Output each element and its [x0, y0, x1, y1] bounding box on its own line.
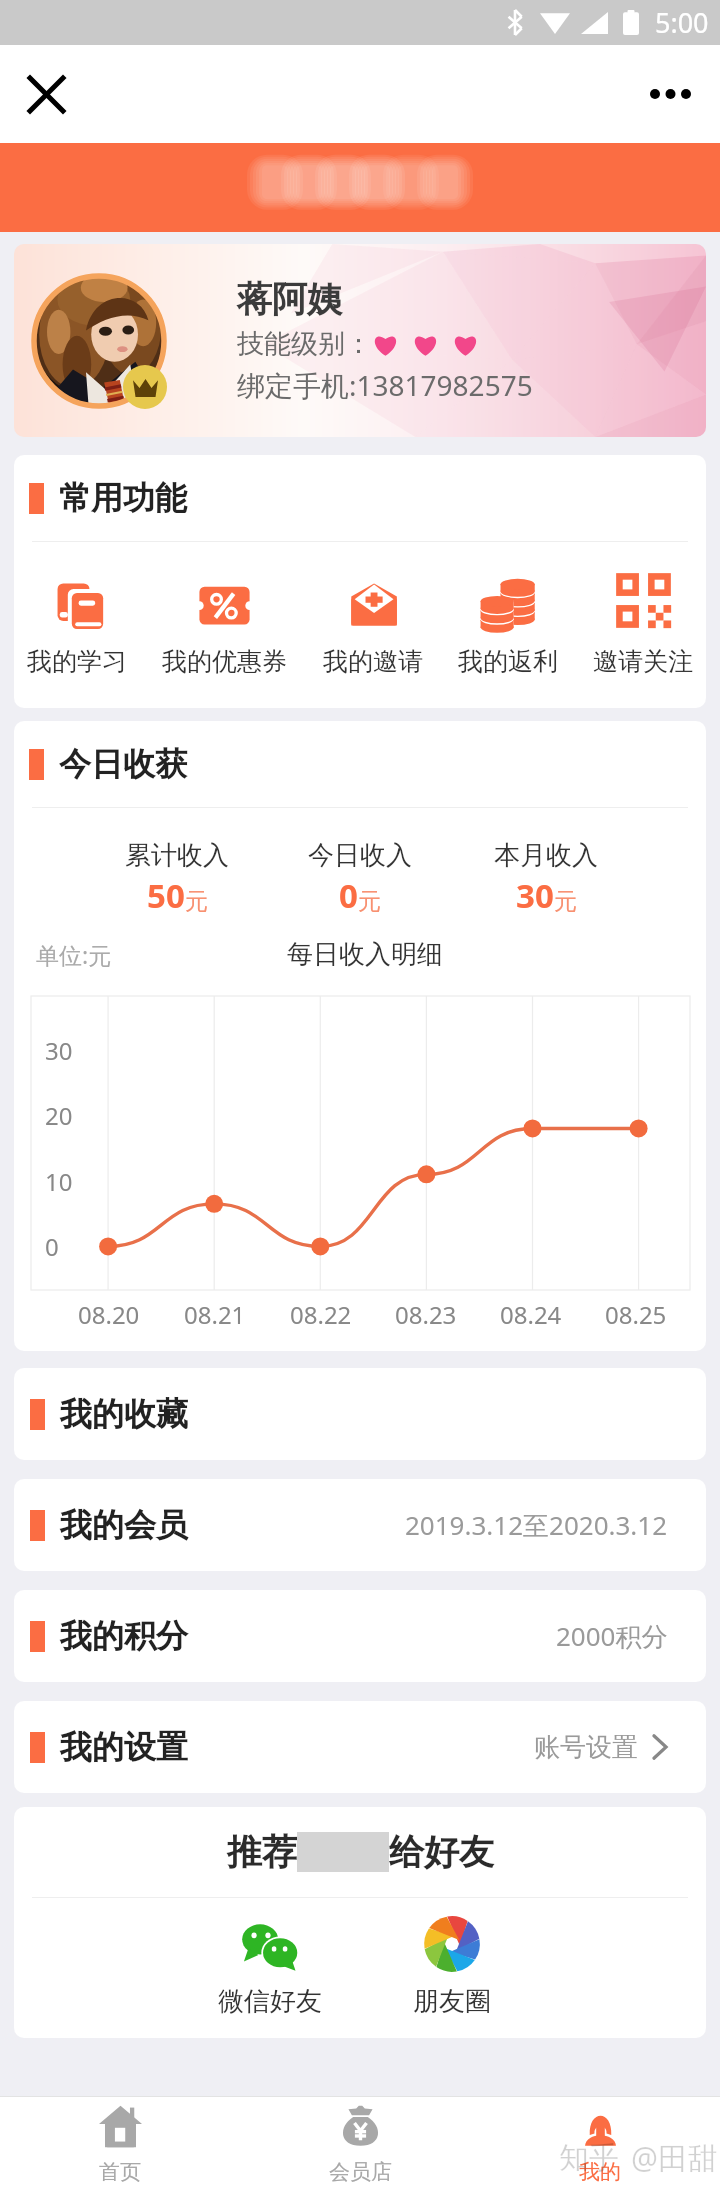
button[interactable]: 首页 [0, 2097, 240, 2192]
button[interactable]: 微信好友 [190, 1913, 350, 2020]
staticText: 微信好友 [218, 1985, 322, 2018]
button[interactable]: 我的邀请 [320, 572, 426, 677]
staticText: 2000积分 [556, 1618, 668, 1654]
staticText: 08.23 [395, 1298, 457, 1330]
button[interactable]: 我的收藏 [14, 1368, 706, 1460]
staticText: @田甜 [631, 2137, 718, 2178]
staticText: 30 [45, 1034, 73, 1067]
button[interactable]: 我的会员 [14, 1479, 706, 1571]
button[interactable]: 我的 [480, 2097, 720, 2192]
staticText: 推荐 [227, 1830, 297, 1874]
staticText: 我的会员 [60, 1505, 188, 1545]
button[interactable]: 我的优惠券 [159, 572, 290, 677]
button[interactable]: 我的返利 [455, 572, 561, 677]
staticText: 单位:元 [36, 939, 112, 970]
staticText: 元 [554, 887, 577, 916]
staticText: 我的邀请 [323, 646, 423, 677]
button[interactable]: 朋友圈 [385, 1913, 519, 2020]
staticText: 元 [185, 887, 208, 916]
staticText: 技能级别： [237, 327, 372, 361]
staticText: 0 [45, 1230, 59, 1263]
staticText: 蒋阿姨 [237, 277, 342, 321]
staticText: 我的优惠券 [162, 646, 287, 677]
staticText: 每日收入明细 [287, 938, 443, 971]
button[interactable]: Close [18, 66, 74, 122]
staticText: 我的积分 [60, 1616, 188, 1656]
staticText: 0 [339, 873, 358, 918]
staticText: 本月收入 [494, 839, 598, 872]
staticText: 绑定手机:13817982575 [237, 366, 533, 404]
staticText: 08.21 [184, 1298, 246, 1330]
staticText: 08.22 [290, 1298, 352, 1330]
button[interactable]: 我的学习 [24, 572, 130, 677]
staticText: 知乎 [559, 2139, 619, 2177]
staticText: 2019.3.12至2020.3.12 [405, 1507, 668, 1543]
staticText: 08.24 [500, 1298, 562, 1330]
staticText: 20 [45, 1099, 73, 1132]
button[interactable]: 我的设置 [14, 1701, 706, 1793]
staticText: 会员店 [329, 2159, 392, 2185]
staticText: 我的学习 [27, 646, 127, 677]
staticText: 08.25 [605, 1298, 667, 1330]
staticText: 我的设置 [60, 1727, 188, 1767]
staticText: 30 [516, 873, 554, 918]
staticText: 我的收藏 [60, 1394, 188, 1434]
button[interactable]: 会员店 [240, 2097, 480, 2192]
button[interactable]: More options [642, 66, 698, 122]
button[interactable]: 我的积分 [14, 1590, 706, 1682]
staticText: 08.20 [78, 1298, 140, 1330]
staticText: 我的 [579, 2159, 621, 2185]
staticText: 今日收入 [308, 839, 412, 872]
staticText: 10 [45, 1165, 73, 1198]
staticText: 常用功能 [59, 478, 187, 518]
button[interactable]: 邀请关注 [590, 572, 696, 677]
staticText: 邀请关注 [593, 646, 693, 677]
button[interactable]: 蒋阿姨 [14, 244, 706, 437]
staticText: 累计收入 [125, 839, 229, 872]
staticText: 今日收获 [59, 744, 187, 784]
staticText: 朋友圈 [413, 1985, 491, 2018]
staticText: 账号设置 [534, 1731, 638, 1764]
staticText: 首页 [99, 2159, 141, 2185]
staticText: 50 [147, 873, 185, 918]
staticText: 我的返利 [458, 646, 558, 677]
staticText: 元 [358, 887, 381, 916]
staticText: 给好友 [389, 1830, 494, 1874]
staticText: 5:00 [655, 4, 709, 41]
